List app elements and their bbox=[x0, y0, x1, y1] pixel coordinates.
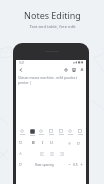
staticText: Notes Editing bbox=[24, 9, 81, 21]
button[interactable]: Draw bbox=[66, 127, 74, 135]
staticText: 0.5 bbox=[73, 163, 78, 167]
staticText: B bbox=[32, 140, 35, 146]
staticText: I bbox=[42, 140, 44, 146]
button[interactable]: Text bbox=[28, 127, 36, 136]
button[interactable]: Save bbox=[71, 67, 77, 73]
button[interactable]: Undo bbox=[63, 67, 69, 73]
button[interactable]: Align bbox=[58, 150, 65, 157]
button[interactable]: U bbox=[48, 139, 55, 146]
staticText: Text and table, free edit bbox=[29, 24, 76, 30]
button[interactable]: Style bbox=[37, 127, 45, 135]
button[interactable]: Decrease bbox=[67, 162, 72, 167]
button[interactable]: B bbox=[30, 139, 37, 146]
button[interactable]: Color bbox=[17, 161, 23, 167]
button[interactable]: Font bbox=[17, 150, 23, 156]
button[interactable]: Align bbox=[48, 150, 55, 157]
button[interactable]: Text box bbox=[17, 139, 23, 145]
staticText: 9:41 bbox=[19, 61, 25, 65]
button[interactable]: Strikethrough bbox=[66, 140, 72, 146]
button[interactable]: Keyboard bbox=[18, 127, 26, 135]
button[interactable]: Align bbox=[38, 150, 45, 157]
button[interactable]: Share bbox=[79, 67, 85, 73]
button[interactable]: More bbox=[76, 127, 84, 135]
button[interactable]: Image bbox=[57, 127, 65, 135]
button[interactable]: I bbox=[39, 139, 46, 146]
button[interactable]: Highlight bbox=[75, 140, 81, 146]
button[interactable]: Table bbox=[47, 127, 55, 135]
staticText: U bbox=[50, 140, 54, 146]
button[interactable]: Back bbox=[17, 66, 24, 73]
staticText: Ulasan meera machine - mild pouska t pri… bbox=[18, 75, 87, 85]
button[interactable]: Increase bbox=[79, 162, 84, 167]
staticText: Row spacing bbox=[35, 163, 54, 167]
